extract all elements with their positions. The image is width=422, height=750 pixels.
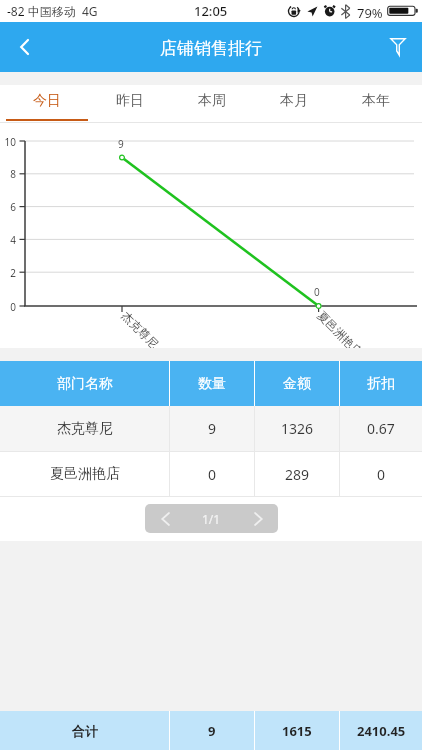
staticText: 夏邑洲艳店 bbox=[50, 465, 120, 483]
staticText: 0 bbox=[208, 465, 217, 484]
button[interactable]: 本月 bbox=[253, 85, 335, 123]
staticText: 4 bbox=[0, 233, 16, 247]
staticText: 1326 bbox=[281, 419, 314, 438]
staticText: 12:05 bbox=[194, 2, 228, 20]
staticText: 本年 bbox=[362, 92, 390, 110]
staticText: 数量 bbox=[198, 375, 226, 393]
staticText: 折扣 bbox=[367, 375, 395, 393]
button[interactable]: 今日 bbox=[5, 85, 88, 123]
other: Next page bbox=[238, 504, 278, 533]
staticText: 9 bbox=[118, 137, 124, 151]
staticText: 6 bbox=[0, 200, 16, 214]
staticText: 0 bbox=[314, 285, 320, 299]
staticText: 8 bbox=[0, 167, 16, 181]
staticText: 0.67 bbox=[367, 419, 395, 438]
staticText: 金额 bbox=[283, 375, 311, 393]
staticText: 79% bbox=[357, 4, 383, 22]
staticText: 1615 bbox=[282, 722, 312, 740]
staticText: 0 bbox=[0, 300, 16, 314]
button[interactable]: 杰克尊尼 bbox=[0, 406, 422, 451]
staticText: 0 bbox=[377, 465, 386, 484]
button[interactable]: Filter bbox=[374, 22, 422, 72]
staticText: 10 bbox=[0, 135, 16, 149]
staticText: 1/1 bbox=[202, 511, 221, 527]
button[interactable]: 夏邑洲艳店 bbox=[0, 452, 422, 496]
staticText: 9 bbox=[208, 722, 216, 740]
staticText: 本月 bbox=[280, 92, 308, 110]
staticText: 昨日 bbox=[116, 92, 144, 110]
staticText: 杰克尊尼 bbox=[57, 420, 113, 438]
button[interactable]: Back bbox=[0, 22, 48, 72]
staticText: -82 中国移动 4G bbox=[7, 3, 98, 19]
staticText: 2410.45 bbox=[357, 722, 406, 740]
staticText: 部门名称 bbox=[57, 375, 113, 393]
staticText: 289 bbox=[285, 465, 310, 484]
button[interactable]: 本年 bbox=[335, 85, 417, 123]
button[interactable]: 昨日 bbox=[88, 85, 171, 123]
staticText: 本周 bbox=[198, 92, 226, 110]
staticText: 夏邑洲艳店 bbox=[314, 308, 365, 359]
staticText: 2 bbox=[0, 266, 16, 280]
staticText: 杰克尊尼 bbox=[119, 309, 161, 351]
other: Previous page bbox=[145, 504, 185, 533]
staticText: 合计 bbox=[72, 723, 98, 739]
staticText: 今日 bbox=[33, 92, 61, 110]
button[interactable]: 本周 bbox=[171, 85, 253, 123]
staticText: 9 bbox=[208, 419, 217, 438]
button[interactable]: Previous page bbox=[145, 504, 278, 533]
staticText: 店铺销售排行 bbox=[160, 38, 262, 59]
